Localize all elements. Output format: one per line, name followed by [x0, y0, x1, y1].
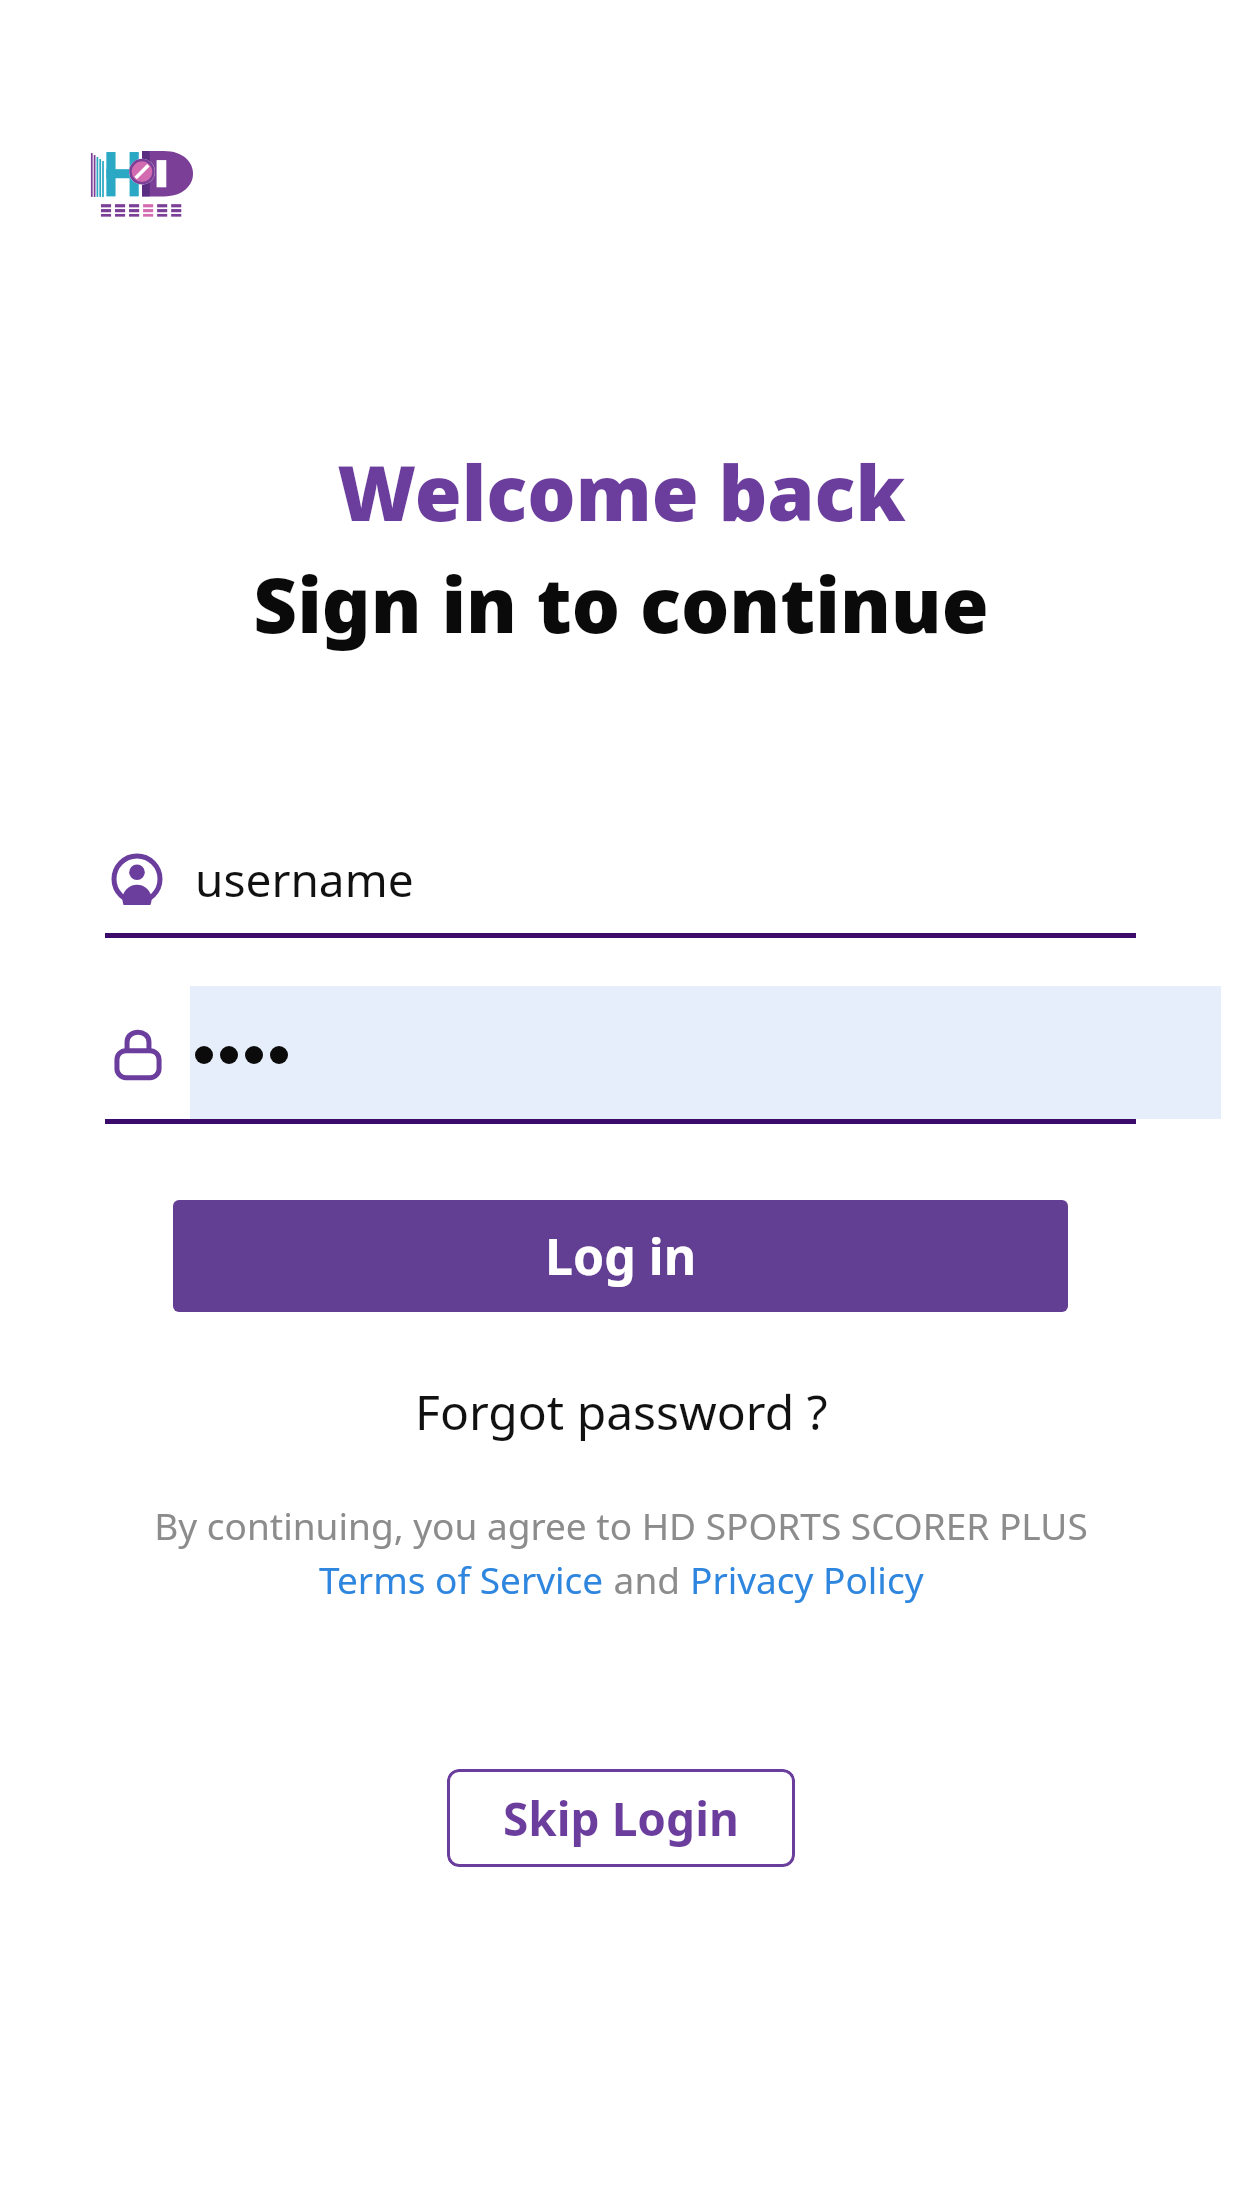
- staticText: username: [195, 848, 414, 911]
- staticText: Forgot password ?: [415, 1379, 828, 1444]
- button[interactable]: Forgot password ?: [397, 1369, 846, 1454]
- staticText: Welcome back: [337, 440, 906, 544]
- button[interactable]: Terms of Service: [319, 1554, 604, 1604]
- staticText: and: [604, 1554, 690, 1604]
- button[interactable]: Privacy Policy: [690, 1554, 924, 1604]
- button[interactable]: Skip Login: [447, 1769, 795, 1867]
- button[interactable]: [105, 986, 1136, 1124]
- staticText: Skip Login: [503, 1787, 739, 1850]
- staticText: Sign in to continue: [253, 552, 989, 656]
- other: HD Sports logo: [88, 148, 196, 220]
- staticText: Log in: [545, 1222, 697, 1290]
- staticText: By continuing, you agree to HD SPORTS SC…: [154, 1500, 1088, 1550]
- staticText: Privacy Policy: [690, 1554, 924, 1604]
- button[interactable]: username: [105, 820, 1136, 938]
- staticText: Terms of Service: [319, 1554, 604, 1604]
- button[interactable]: Log in: [173, 1200, 1068, 1312]
